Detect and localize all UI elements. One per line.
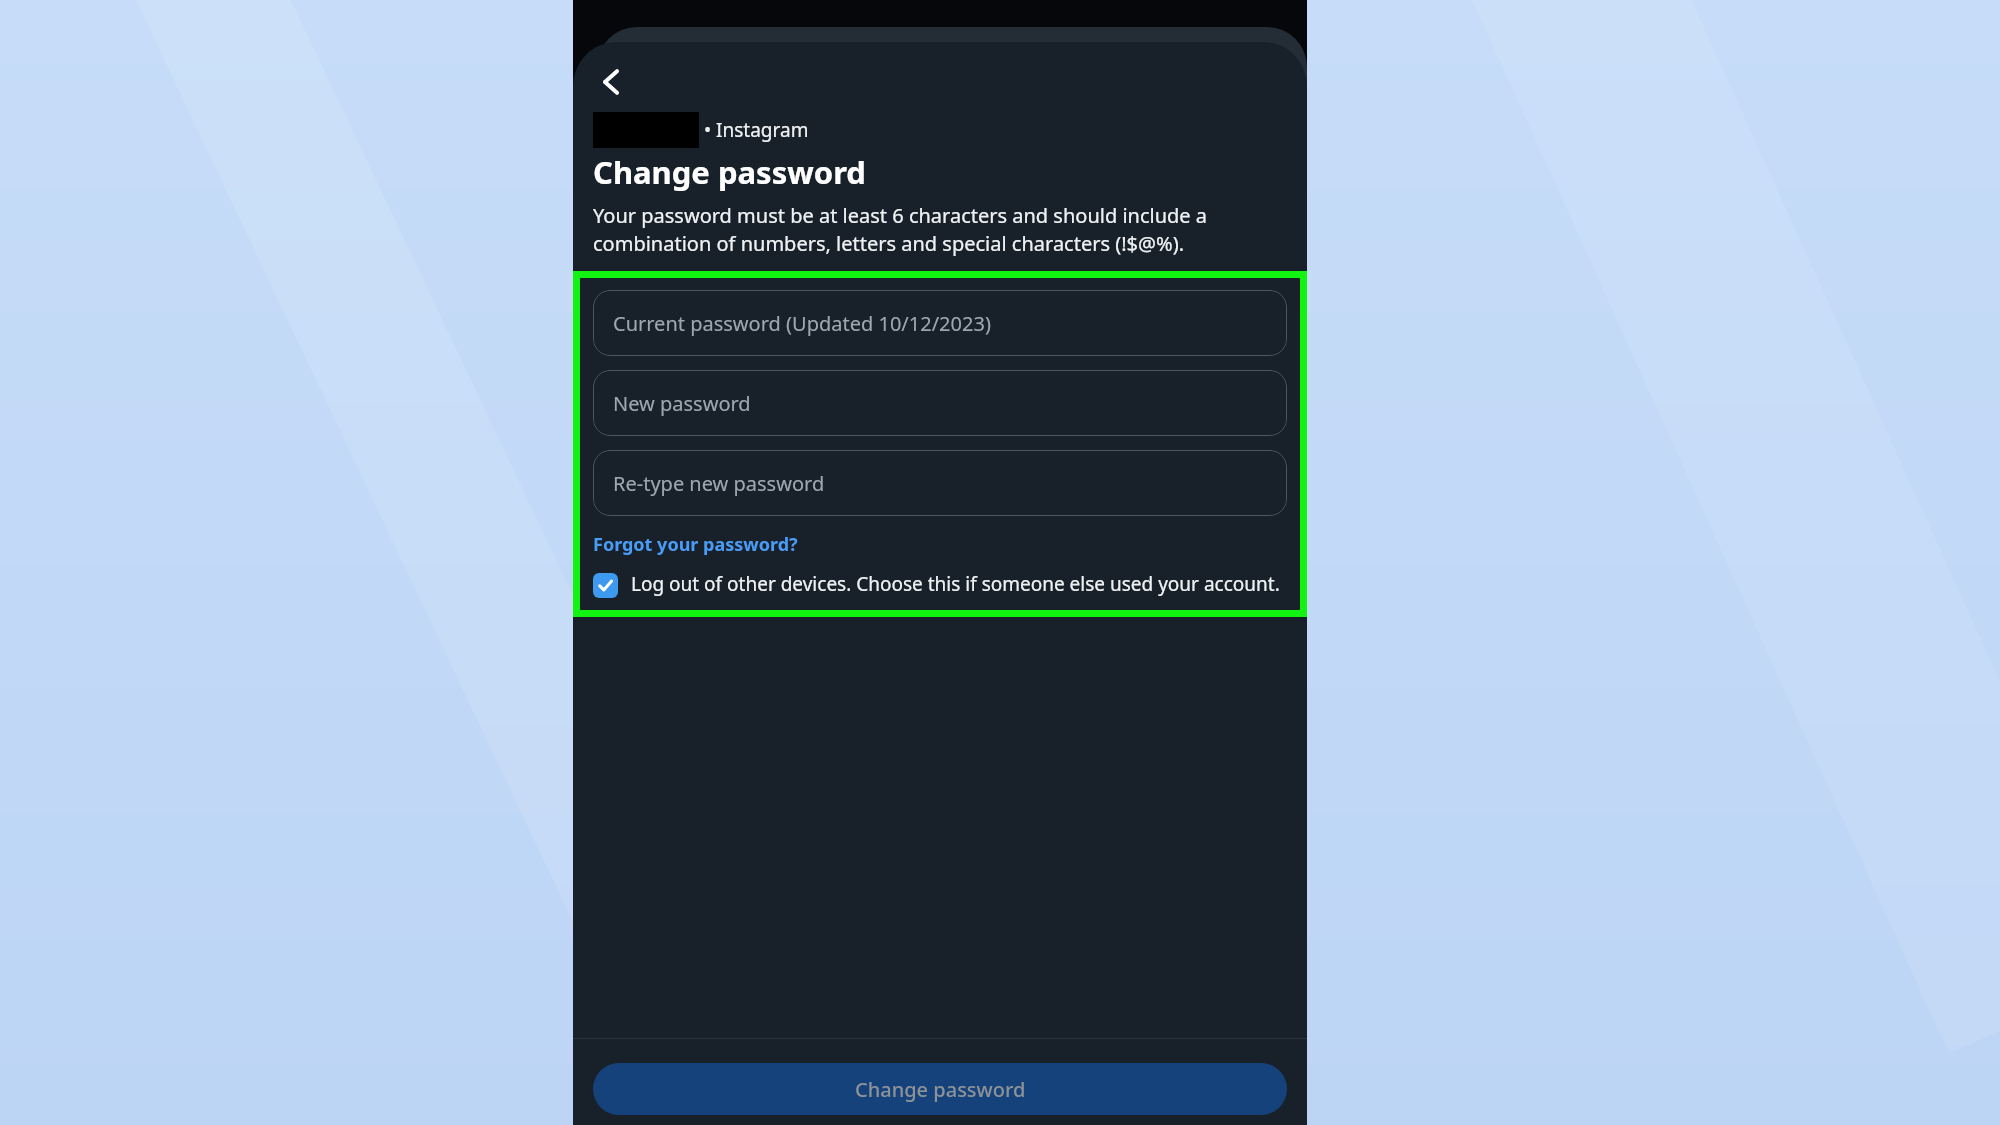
staticText: Log out of other devices. Choose this if…	[631, 571, 1280, 597]
button[interactable]: New password	[593, 370, 1287, 436]
button[interactable]: Change password	[593, 1063, 1287, 1115]
button[interactable]: Re-type new password	[593, 450, 1287, 516]
button[interactable]: Back	[581, 52, 641, 112]
button[interactable]: Forgot your password?	[593, 532, 798, 557]
staticText: Current password (Updated 10/12/2023)	[613, 310, 991, 337]
button[interactable]: Current password (Updated 10/12/2023)	[593, 290, 1287, 356]
staticText: Change password	[593, 151, 866, 193]
staticText: New password	[613, 390, 751, 417]
button[interactable]: Log out of other devices. Choose this if…	[580, 571, 1300, 598]
staticText: • Instagram	[699, 117, 809, 143]
staticText: Change password	[855, 1076, 1026, 1103]
staticText: Re-type new password	[613, 470, 825, 497]
staticText: Forgot your password?	[593, 532, 798, 557]
staticText: Your password must be at least 6 charact…	[593, 202, 1289, 257]
